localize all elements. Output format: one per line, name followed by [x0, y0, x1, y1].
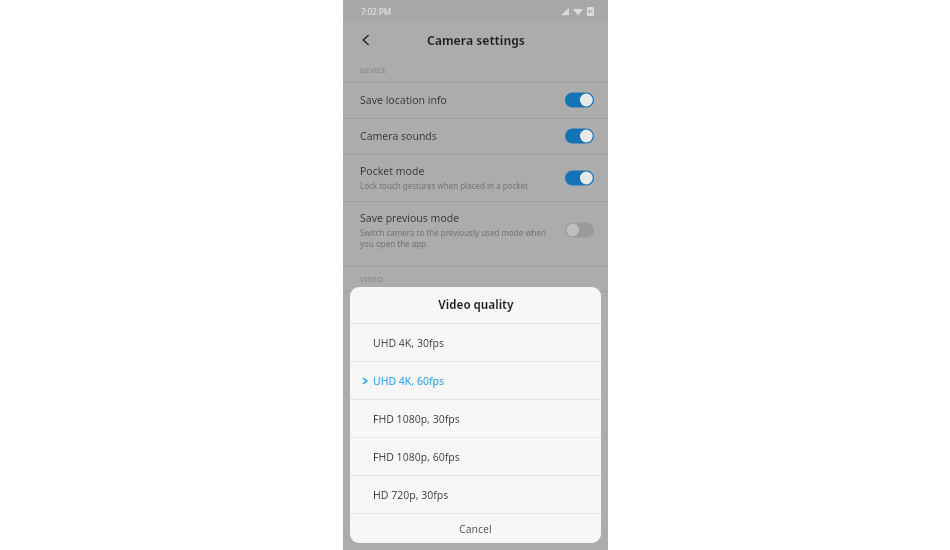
staticText: Save previous mode	[360, 211, 460, 225]
button[interactable]: FHD 1080p, 60fps	[350, 438, 601, 475]
staticText: Camera sounds	[360, 129, 437, 143]
button[interactable]: Toggle on	[565, 128, 594, 144]
button[interactable]: Toggle off	[565, 222, 594, 238]
button[interactable]: Camera sounds	[343, 119, 608, 154]
button[interactable]: UHD 4K, 60fps	[350, 362, 601, 399]
button[interactable]: Toggle on	[565, 170, 594, 186]
button[interactable]: UHD 4K, 30fps	[350, 324, 601, 361]
staticText: Save location info	[360, 93, 447, 107]
staticText: FHD 1080p, 30fps	[373, 412, 460, 426]
button[interactable]: Save location info	[343, 83, 608, 118]
staticText: UHD 4K, 30fps	[373, 336, 445, 350]
staticText: HD 720p, 30fps	[373, 488, 449, 502]
button[interactable]: Toggle on	[565, 92, 594, 108]
staticText: Switch camera to the previously used mod…	[360, 227, 546, 249]
staticText: UHD 4K, 60fps	[360, 317, 415, 328]
staticText: Camera settings	[427, 32, 525, 48]
staticText: FHD 1080p, 60fps	[373, 450, 460, 464]
staticText: Pocket mode	[360, 164, 425, 178]
staticText: Video quality	[438, 297, 514, 313]
button[interactable]: Navigate up	[353, 27, 379, 53]
button[interactable]: HD 720p, 30fps	[350, 476, 601, 513]
staticText: DEVICE	[360, 65, 386, 75]
staticText: VIDEO	[360, 274, 383, 284]
button[interactable]: FHD 1080p, 30fps	[350, 400, 601, 437]
button[interactable]: Video quality	[343, 292, 608, 338]
staticText: UHD 4K, 60fps	[373, 374, 445, 388]
staticText: 99	[588, 9, 593, 14]
button[interactable]: Cancel	[350, 514, 601, 543]
staticText: Cancel	[459, 522, 492, 536]
button[interactable]: Save previous mode	[343, 202, 608, 259]
staticText: 7:02 PM	[361, 6, 392, 17]
staticText: Lock touch gestures when placed in a poc…	[360, 180, 528, 191]
button[interactable]: Pocket mode	[343, 155, 608, 201]
